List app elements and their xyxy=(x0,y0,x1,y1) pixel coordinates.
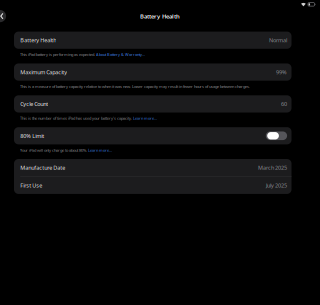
staticText: 60 xyxy=(281,100,287,108)
button[interactable]: Cycle Count xyxy=(14,95,291,112)
staticText: 80% Limit xyxy=(20,132,44,139)
staticText: Normal xyxy=(269,36,287,44)
staticText: 99% xyxy=(276,68,287,76)
staticText: March 2025 xyxy=(258,164,287,171)
button[interactable]: Battery Health xyxy=(14,32,291,49)
staticText: First Use xyxy=(20,182,42,189)
staticText: Learn more... xyxy=(88,147,112,153)
staticText: Maximum Capacity xyxy=(20,68,67,76)
staticText: About Battery & Warranty... xyxy=(96,52,145,57)
staticText: This is a measure of battery capacity re… xyxy=(20,84,250,89)
button[interactable]: Back xyxy=(0,10,6,22)
staticText: Battery Health xyxy=(20,36,56,44)
button[interactable]: Maximum Capacity xyxy=(14,63,291,81)
staticText: Learn more... xyxy=(133,116,157,121)
staticText: This iPad battery is performing as expec… xyxy=(20,52,96,57)
button[interactable]: First Use xyxy=(14,177,291,194)
staticText: This is the number of times iPad has use… xyxy=(20,116,133,121)
staticText: Your iPad will only charge to about 80%. xyxy=(20,147,88,153)
staticText: Manufacture Date xyxy=(20,164,65,171)
staticText: Cycle Count xyxy=(20,100,48,108)
staticText: July 2025 xyxy=(266,182,287,189)
button[interactable]: 80% Limit xyxy=(14,127,291,144)
button[interactable]: Manufacture Date xyxy=(14,159,291,176)
staticText: Battery Health xyxy=(140,12,180,20)
